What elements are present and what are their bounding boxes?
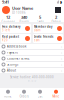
button[interactable]: Payment — [0, 50, 64, 55]
button[interactable]: Home — [0, 88, 16, 100]
staticText: Red packet — [2, 35, 19, 38]
button[interactable]: Mine — [48, 88, 64, 100]
staticText: User Name — [12, 6, 33, 11]
staticText: Cart — [37, 95, 42, 98]
button[interactable]: 5 — [32, 16, 48, 22]
button[interactable]: QR code — [55, 7, 64, 13]
staticText: 5 — [39, 15, 41, 20]
staticText: Address book — [7, 45, 26, 48]
staticText: claim — [34, 28, 40, 32]
button[interactable]: 12 — [0, 16, 16, 22]
button[interactable]: Red packet — [1, 34, 31, 43]
button[interactable]: Member day — [33, 24, 63, 33]
staticText: Member day — [34, 25, 52, 28]
staticText: earn — [34, 38, 40, 42]
staticText: 2 — [55, 15, 57, 20]
staticText: Cards — [36, 20, 43, 23]
staticText: Invite friends — [34, 35, 53, 38]
staticText: › — [61, 44, 62, 49]
button[interactable]: Cart — [32, 88, 48, 100]
button[interactable]: Settings — [0, 62, 64, 67]
staticText: Customer service — [7, 57, 30, 60]
staticText: Service hotline 400-000-0000 — [10, 75, 54, 79]
staticText: Home — [4, 95, 12, 98]
staticText: › — [61, 56, 62, 61]
staticText: › — [61, 50, 62, 55]
button[interactable]: Free delivery — [1, 24, 31, 33]
staticText: 9:41 — [2, 0, 9, 5]
button[interactable]: 2 — [48, 16, 64, 22]
staticText: Free delivery — [2, 25, 20, 28]
staticText: About — [7, 69, 16, 72]
staticText: ıl ◗ — [57, 0, 62, 5]
button[interactable]: Invite friends — [33, 34, 63, 43]
staticText: v1.0.0 — [27, 79, 36, 82]
staticText: Coupons — [1, 20, 14, 23]
button[interactable]: Customer service — [0, 56, 64, 61]
staticText: Payment — [7, 51, 18, 54]
staticText: 340 — [21, 15, 27, 20]
staticText: 3 left — [2, 28, 10, 32]
button[interactable]: About — [0, 68, 64, 73]
staticText: Orders — [51, 20, 60, 23]
staticText: 12 — [6, 15, 10, 20]
staticText: Points — [19, 20, 28, 23]
staticText: Orders — [19, 95, 28, 98]
staticText: ¥20 — [2, 38, 8, 42]
staticText: › — [61, 62, 62, 67]
staticText: Mine — [52, 95, 59, 98]
button[interactable]: 340 — [16, 16, 32, 22]
staticText: › — [61, 68, 62, 73]
button[interactable]: Address book — [0, 44, 64, 49]
staticText: ID 10086 — [12, 11, 26, 14]
staticText: Settings — [7, 63, 18, 66]
button[interactable]: Orders — [16, 88, 32, 100]
